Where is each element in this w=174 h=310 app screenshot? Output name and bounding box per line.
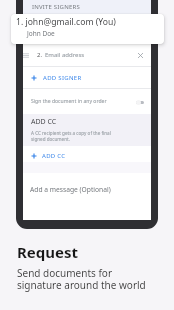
staticText: ADD CC — [31, 117, 57, 127]
staticText: Send documents for signature around the … — [17, 266, 146, 292]
staticText: Email address — [45, 51, 85, 59]
button[interactable]: Add a message (Optional) — [23, 173, 151, 220]
button[interactable]: 2. — [23, 44, 151, 66]
staticText: 2. — [37, 51, 43, 59]
button[interactable]: ADD SIGNER — [23, 67, 151, 88]
staticText: Add a message (Optional) — [30, 185, 111, 194]
staticText: Sign the document in any order — [31, 98, 107, 105]
staticText: ADD CC — [42, 152, 66, 160]
staticText: John Doe — [27, 29, 55, 38]
button[interactable]: 1. john@gmail.com (You) — [11, 14, 164, 44]
staticText: A CC recipient gets a copy of the final … — [31, 130, 111, 142]
staticText: Request — [17, 242, 79, 262]
button[interactable]: Sign in any order toggle — [136, 99, 144, 105]
staticText: 1. john@gmail.com (You) — [16, 16, 116, 28]
staticText: INVITE SIGNERS — [32, 3, 80, 11]
button[interactable]: Sign the document in any order — [23, 89, 151, 114]
button[interactable]: ADD CC — [23, 146, 151, 162]
button[interactable]: Remove signer — [136, 51, 145, 60]
staticText: ADD SIGNER — [43, 74, 82, 82]
